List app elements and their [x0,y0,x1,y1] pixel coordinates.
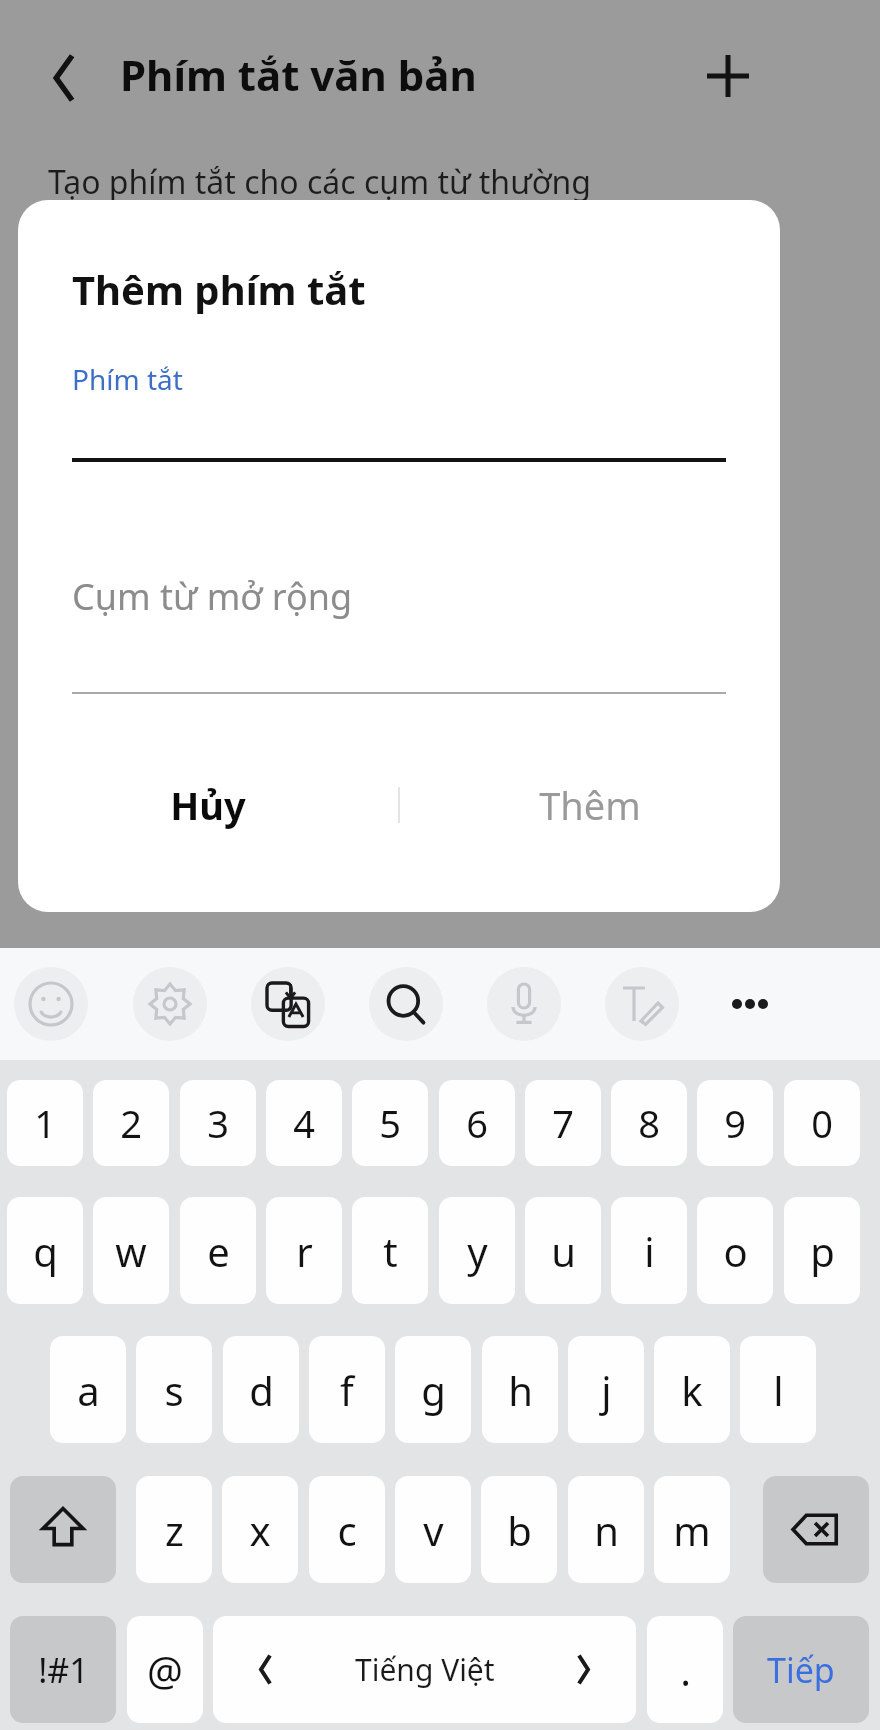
staticText: l [773,1363,784,1417]
button[interactable]: Tiếp [733,1616,869,1723]
button[interactable]: Settings [133,967,207,1041]
staticText: y [467,1224,488,1278]
button[interactable]: t [352,1197,428,1304]
button[interactable]: q [7,1197,83,1304]
button[interactable]: 9 [697,1080,773,1166]
button[interactable]: Shift [10,1476,116,1583]
button[interactable]: Handwriting [605,967,679,1041]
button[interactable]: a [50,1336,126,1443]
staticText: 1 [34,1097,56,1149]
button[interactable]: w [93,1197,169,1304]
staticText: x [249,1503,271,1557]
staticText: r [296,1224,313,1278]
button[interactable]: b [481,1476,557,1583]
staticText: Phím tắt văn bản [120,46,477,103]
button[interactable]: Thêm [400,700,780,910]
staticText: b [507,1503,532,1557]
button[interactable]: 1 [7,1080,83,1166]
staticText: . [680,1643,691,1697]
button[interactable]: More options [713,967,787,1041]
button[interactable]: c [309,1476,385,1583]
staticText: m [673,1503,711,1557]
button[interactable]: k [654,1336,730,1443]
staticText: Thêm phím tắt [72,262,366,316]
staticText: e [207,1224,230,1278]
staticText: 4 [293,1097,315,1149]
button[interactable]: 0 [784,1080,860,1166]
staticText: 9 [724,1097,746,1149]
staticText: Tiếng Việt [355,1649,495,1690]
button[interactable]: . [647,1616,723,1723]
staticText: h [508,1363,533,1417]
button[interactable]: Emoji [14,967,88,1041]
staticText: 5 [379,1097,401,1149]
button[interactable]: f [309,1336,385,1443]
button[interactable]: !#1 [10,1616,116,1723]
staticText: j [601,1363,612,1417]
button[interactable]: i [611,1197,687,1304]
staticText: p [810,1224,835,1278]
button[interactable]: Hủy [18,700,398,910]
staticText: 7 [552,1097,574,1149]
staticText: w [115,1224,147,1278]
button[interactable]: p [784,1197,860,1304]
staticText: c [337,1503,357,1557]
staticText: t [383,1224,398,1278]
button[interactable]: x [222,1476,298,1583]
button[interactable]: 6 [439,1080,515,1166]
staticText: k [681,1363,703,1417]
staticText: g [421,1363,446,1417]
button[interactable]: Add [690,38,766,114]
staticText: n [594,1503,619,1557]
button[interactable]: Tiếng Việt [213,1616,636,1723]
staticText: d [249,1363,274,1417]
button[interactable]: l [740,1336,816,1443]
staticText: Tiếp [767,1647,835,1693]
staticText: Thêm [539,779,641,831]
button[interactable]: s [136,1336,212,1443]
button[interactable]: u [525,1197,601,1304]
button[interactable]: 8 [611,1080,687,1166]
button[interactable]: v [395,1476,471,1583]
button[interactable]: Translate [251,967,325,1041]
staticText: i [644,1224,655,1278]
button[interactable]: o [697,1197,773,1304]
staticText: Phím tắt [72,360,183,398]
staticText: Cụm từ mở rộng [72,572,353,621]
button[interactable]: m [654,1476,730,1583]
staticText: 3 [207,1097,229,1149]
staticText: Tạo phím tắt cho các cụm từ thường [48,160,591,204]
button[interactable]: Voice input [487,967,561,1041]
button[interactable]: Backspace [763,1476,869,1583]
staticText: v [423,1503,444,1557]
button[interactable]: j [568,1336,644,1443]
button[interactable]: r [266,1197,342,1304]
button[interactable]: @ [127,1616,203,1723]
button[interactable]: h [482,1336,558,1443]
button[interactable]: y [439,1197,515,1304]
button[interactable]: e [180,1197,256,1304]
button[interactable]: 7 [525,1080,601,1166]
button[interactable]: Search [369,967,443,1041]
staticText: q [33,1224,58,1278]
button[interactable]: 5 [352,1080,428,1166]
button[interactable]: g [395,1336,471,1443]
staticText: o [723,1224,748,1278]
staticText: @ [147,1643,183,1697]
staticText: u [551,1224,576,1278]
staticText: z [165,1503,184,1557]
button[interactable]: 4 [266,1080,342,1166]
button[interactable]: Back [28,42,100,114]
staticText: 8 [638,1097,660,1149]
staticText: 2 [120,1097,142,1149]
staticText: Hủy [170,779,246,831]
button[interactable]: 2 [93,1080,169,1166]
button[interactable]: d [223,1336,299,1443]
button[interactable]: 3 [180,1080,256,1166]
staticText: 6 [466,1097,488,1149]
staticText: f [340,1363,354,1417]
button[interactable]: n [568,1476,644,1583]
button[interactable]: z [136,1476,212,1583]
